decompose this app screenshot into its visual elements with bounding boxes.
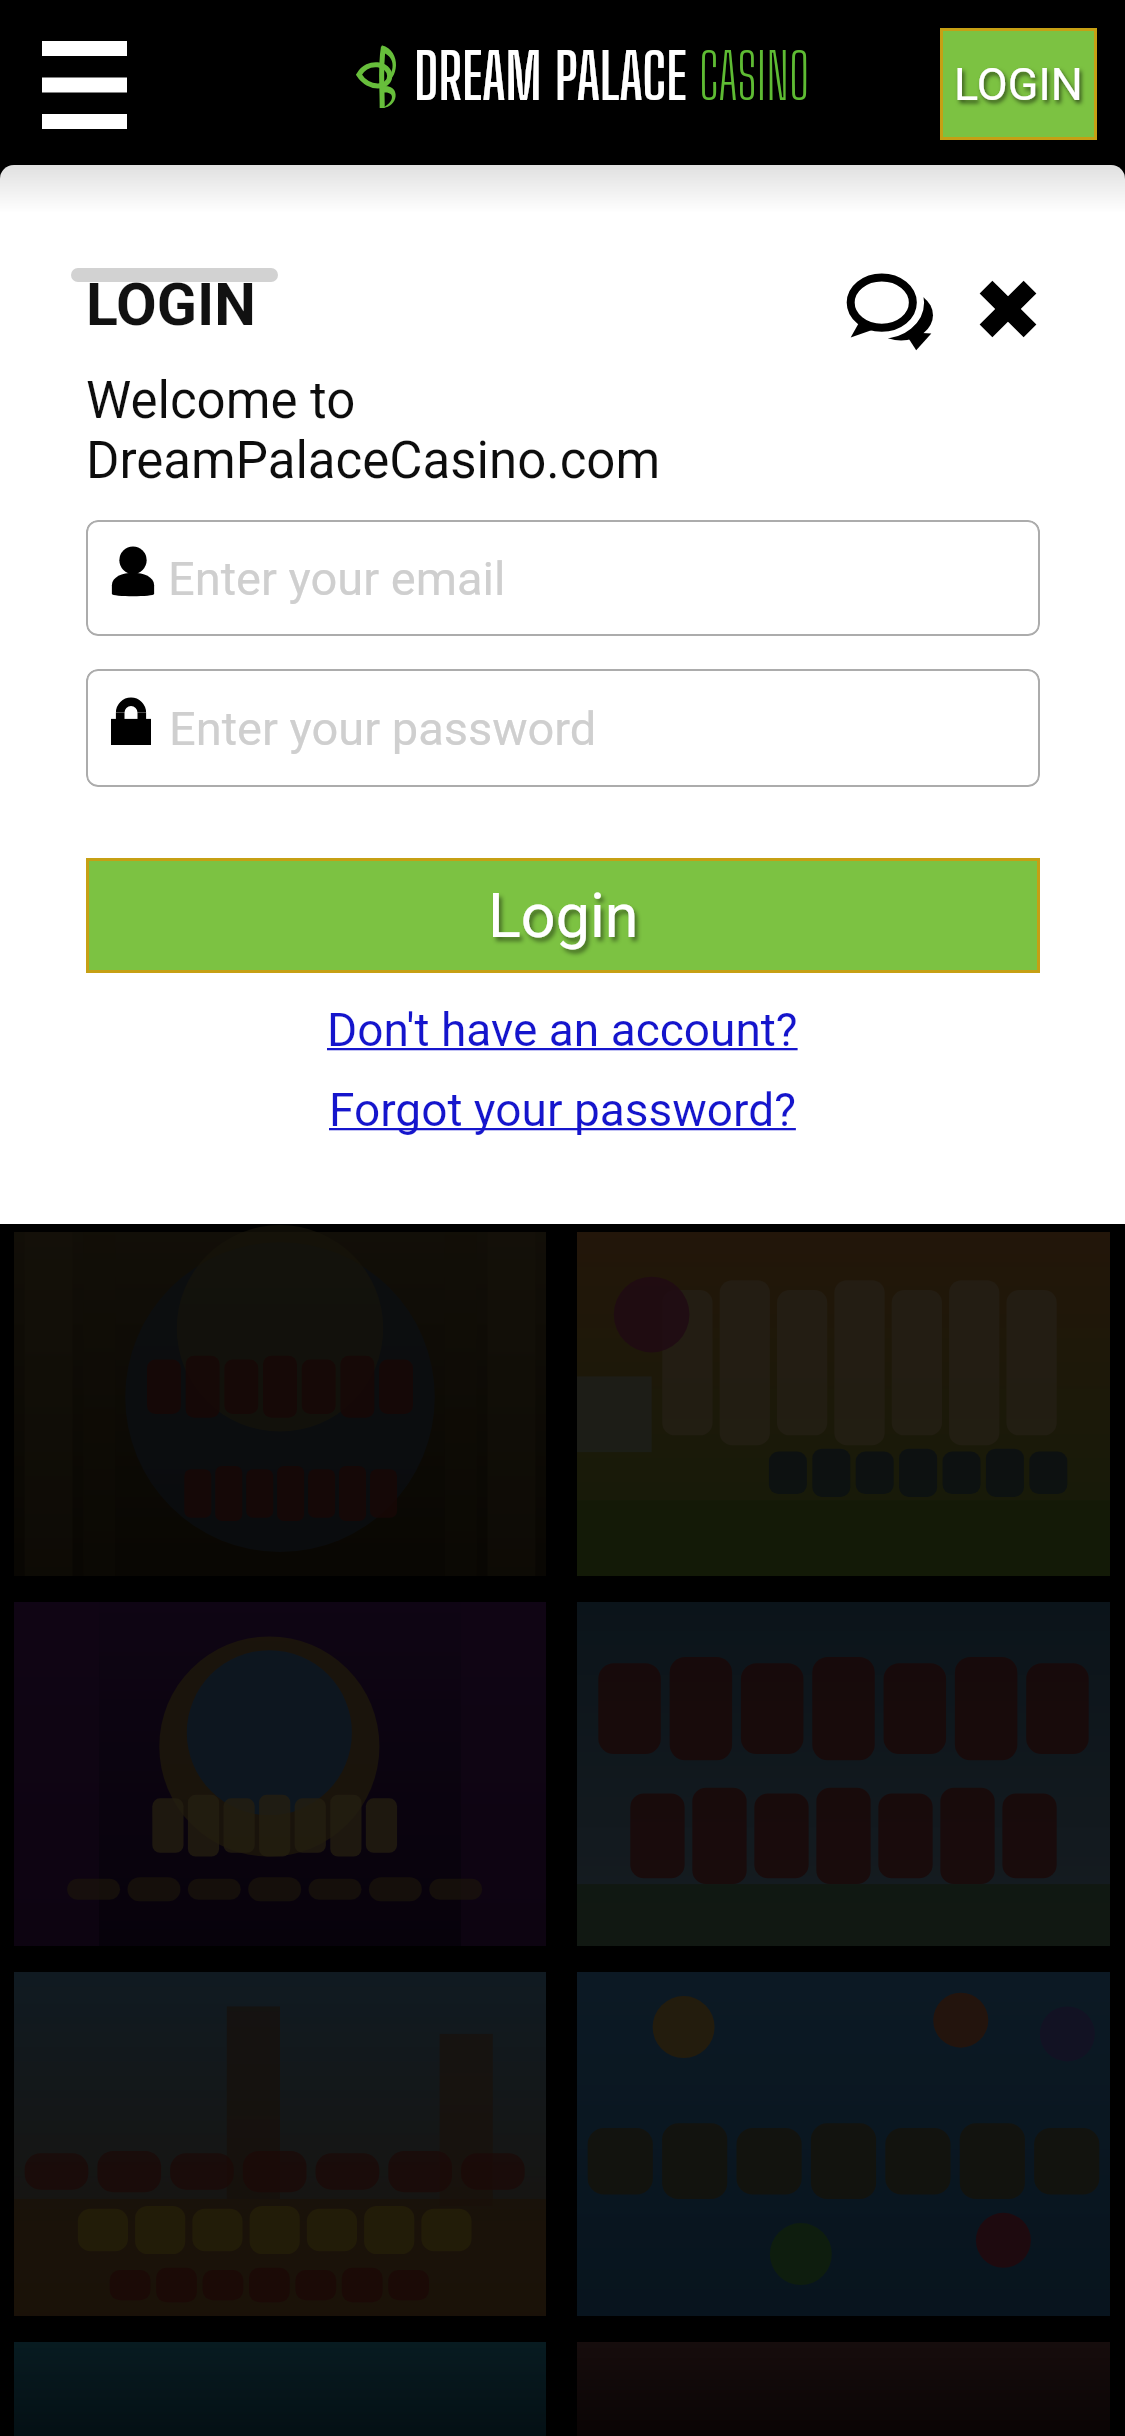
- staticText: DreamPalaceCasino.com: [86, 431, 661, 491]
- button[interactable]: Login: [89, 861, 1037, 970]
- button[interactable]: LOGIN: [943, 31, 1094, 137]
- button[interactable]: Don't have an account?: [309, 992, 816, 1068]
- button[interactable]: Foxpot: [14, 1602, 546, 1946]
- button[interactable]: Casino game: [577, 2342, 1110, 2436]
- staticText: DREAM PALACE: [414, 39, 687, 113]
- staticText: Forgot your password?: [329, 1083, 796, 1137]
- button[interactable]: Live chat: [829, 261, 953, 361]
- staticText: Login: [488, 880, 639, 951]
- button[interactable]: Rainbow Riches: [577, 1602, 1110, 1946]
- button[interactable]: Golden Stallion Ultraways: [14, 1972, 546, 2316]
- staticText: Welcome to: [86, 371, 356, 431]
- staticText: LOGIN: [954, 58, 1083, 111]
- staticText: LOGIN: [86, 270, 256, 339]
- button[interactable]: Book of Dead: [14, 1232, 546, 1576]
- button[interactable]: Menu: [22, 20, 147, 130]
- button[interactable]: Enter your password: [86, 669, 1040, 787]
- button[interactable]: Reel Rush: [577, 1972, 1110, 2316]
- staticText: Don't have an account?: [327, 1003, 798, 1057]
- button[interactable]: Forgot your password?: [311, 1072, 814, 1148]
- staticText: Enter your email: [168, 551, 506, 606]
- staticText: CASINO: [699, 39, 810, 113]
- button[interactable]: Enter your email: [86, 520, 1040, 636]
- button[interactable]: Aloha Cluster Pays: [577, 1232, 1110, 1576]
- staticText: Enter your password: [169, 701, 597, 756]
- button[interactable]: Close: [952, 259, 1064, 359]
- button[interactable]: Ocean game: [14, 2342, 546, 2436]
